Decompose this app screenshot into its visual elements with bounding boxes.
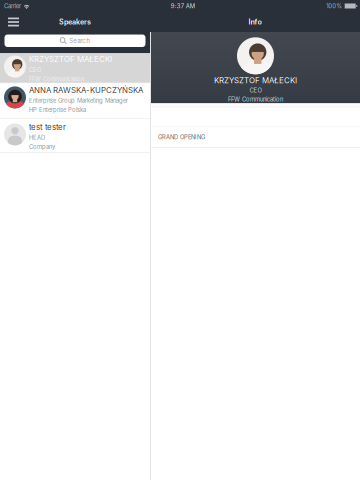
button[interactable]: GRAND OPENING (151, 127, 360, 147)
staticText: Enterprise Group Marketing Manager (29, 97, 128, 104)
staticText: Search (69, 37, 90, 44)
button[interactable]: ANNA RAWSKA-KUPCZYŃSKA (0, 83, 150, 118)
staticText: GRAND OPENING (158, 134, 205, 140)
staticText: Info (248, 18, 261, 26)
staticText: KRZYSZTOF MAŁECKI (214, 76, 297, 85)
staticText: HEAD (29, 134, 45, 141)
staticText: FFW Communication (228, 96, 283, 103)
button[interactable]: KRZYSZTOF MAŁECKI (0, 53, 150, 83)
staticText: FFW Communication (29, 75, 84, 83)
staticText: CEO (249, 87, 261, 94)
staticText: test tester (29, 122, 66, 132)
staticText: Carrier (4, 2, 21, 10)
staticText: HP Enterprise Polska (29, 106, 86, 113)
staticText: Speakers (59, 18, 91, 26)
staticText: ANNA RAWSKA-KUPCZYŃSKA (29, 85, 143, 95)
button[interactable]: Menu (0, 12, 27, 32)
button[interactable]: test tester (0, 119, 150, 152)
button[interactable]: Search (4, 34, 145, 47)
staticText: CEO (29, 66, 41, 73)
staticText: 100% (326, 2, 342, 10)
staticText: KRZYSZTOF MAŁECKI (29, 54, 112, 64)
staticText: 9:37 AM (171, 2, 195, 10)
staticText: Company (29, 143, 55, 150)
